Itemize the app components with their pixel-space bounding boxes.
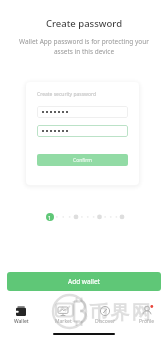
button[interactable]: Confirm — [37, 154, 128, 166]
staticText: Discover — [95, 318, 116, 324]
staticText: Wallet — [14, 318, 29, 324]
staticText: 币界网 — [89, 301, 153, 325]
button[interactable]: Market — [42, 304, 84, 324]
staticText: Wallet App password is for protecting yo… — [12, 37, 156, 56]
button[interactable]: Profile — [126, 304, 168, 324]
button[interactable] — [37, 106, 128, 118]
staticText: Create security password — [37, 91, 97, 98]
staticText: Market — [55, 318, 72, 324]
staticText: Create password — [0, 17, 168, 30]
staticText: Confirm — [73, 157, 93, 164]
staticText: Add wallet — [68, 277, 100, 286]
button[interactable]: 1 — [46, 213, 54, 221]
button[interactable]: Wallet — [0, 304, 42, 324]
button[interactable]: Add wallet — [7, 272, 161, 291]
staticText: 1 — [48, 214, 52, 221]
staticText: Profile — [139, 318, 155, 324]
button[interactable]: Discover — [84, 304, 126, 324]
button[interactable] — [37, 125, 128, 137]
